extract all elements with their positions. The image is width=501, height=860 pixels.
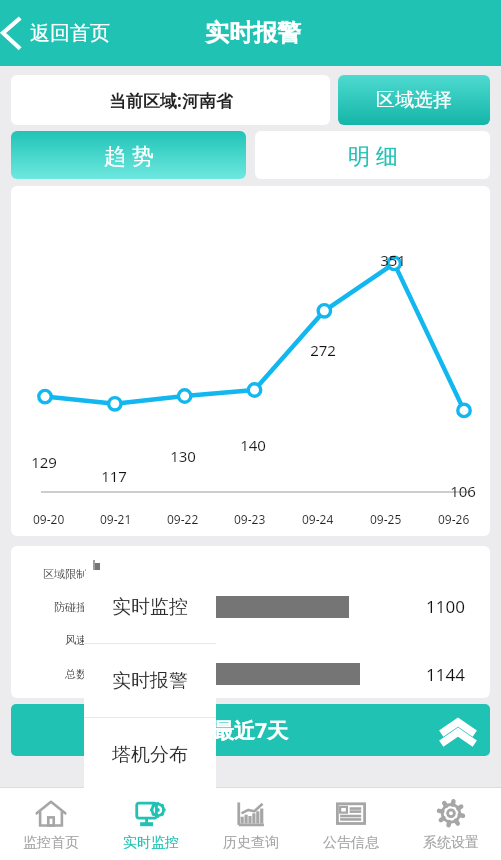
button[interactable]: 最近7天	[11, 704, 490, 756]
staticText: 塔机分布	[112, 743, 188, 767]
staticText: 117	[94, 466, 134, 486]
staticText: 272	[303, 340, 343, 360]
staticText: 09-23	[234, 511, 266, 527]
staticText: 总数	[65, 667, 87, 681]
staticText: 防碰撞	[54, 600, 87, 614]
staticText: 系统设置	[423, 834, 479, 852]
staticText: 1144	[426, 663, 465, 686]
staticText: 实时监控	[123, 834, 179, 852]
button[interactable]: 公告信息	[301, 788, 401, 860]
button[interactable]: 趋 势	[11, 131, 246, 179]
staticText: 风速	[65, 633, 87, 647]
staticText: 实时监控	[112, 595, 188, 619]
button[interactable]: 实时监控	[101, 788, 201, 860]
staticText: 09-26	[438, 511, 470, 527]
staticText: 09-24	[302, 511, 334, 527]
button[interactable]: 历史查询	[201, 788, 301, 860]
other: Expand	[440, 712, 476, 748]
button[interactable]: 实时报警	[84, 644, 216, 717]
staticText: 历史查询	[223, 834, 279, 852]
button[interactable]: 监控首页	[0, 788, 101, 860]
button[interactable]: 塔机分布	[84, 718, 216, 791]
button[interactable]: 返回首页	[0, 13, 110, 53]
staticText: 实时报警	[112, 669, 188, 693]
staticText: 09-21	[100, 511, 132, 527]
staticText: 区域选择	[376, 88, 452, 112]
staticText: 区域限制	[43, 567, 87, 581]
staticText: 106	[443, 481, 483, 501]
staticText: 趋 势	[104, 140, 154, 170]
staticText: 返回首页	[30, 21, 110, 46]
staticText: 最近7天	[213, 716, 289, 745]
staticText: 实时报警	[205, 18, 301, 48]
staticText: 129	[24, 452, 64, 472]
staticText: 明 细	[348, 140, 398, 170]
staticText: 130	[163, 446, 203, 466]
staticText: 当前区域:河南省	[109, 89, 233, 112]
button[interactable]: 系统设置	[401, 788, 501, 860]
staticText: 140	[233, 435, 273, 455]
button[interactable]: 当前区域:河南省	[11, 75, 330, 125]
staticText: 1100	[426, 595, 465, 618]
button[interactable]: 区域选择	[338, 75, 490, 125]
staticText: 09-20	[33, 511, 65, 527]
staticText: 09-25	[370, 511, 402, 527]
staticText: 公告信息	[323, 834, 379, 852]
staticText: 351	[373, 250, 413, 270]
button[interactable]: 明 细	[255, 131, 490, 179]
button[interactable]: 实时监控	[84, 570, 216, 643]
staticText: 监控首页	[23, 834, 79, 852]
staticText: 09-22	[167, 511, 199, 527]
